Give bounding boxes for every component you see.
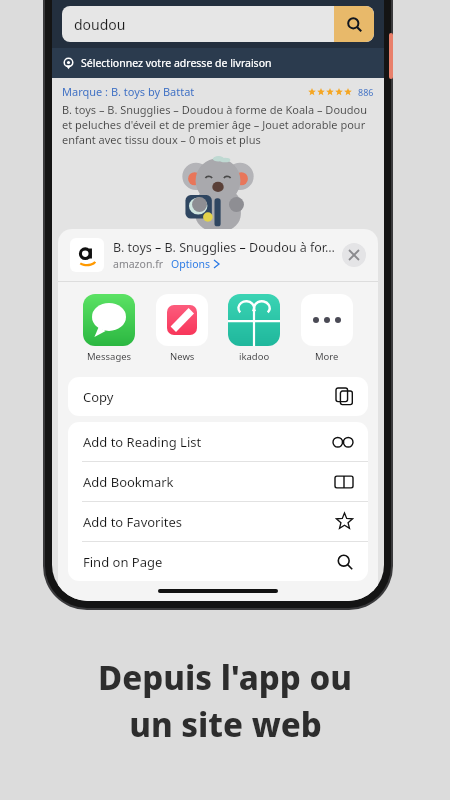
button[interactable]: News	[152, 294, 212, 363]
staticText: ikadoo	[239, 350, 270, 363]
staticText: amazon.fr	[113, 257, 164, 271]
button[interactable]: Add to Reading List	[68, 422, 368, 461]
staticText: News	[170, 350, 195, 363]
button[interactable]: Copy	[68, 377, 368, 416]
staticText: Messages	[87, 350, 132, 363]
button[interactable]: Options	[171, 257, 219, 271]
button[interactable]: Marque : B. toys by Battat	[62, 84, 308, 99]
staticText: Depuis l'app ou	[98, 655, 352, 700]
button[interactable]: Add Bookmark	[68, 462, 368, 501]
staticText: 886	[358, 86, 374, 98]
button[interactable]: Find on Page	[68, 542, 368, 581]
staticText: un site web	[129, 702, 322, 747]
staticText: Options	[171, 257, 211, 271]
staticText: doudou	[74, 15, 334, 34]
button[interactable]: ikadoo	[224, 294, 284, 363]
button[interactable]: Search	[334, 6, 374, 42]
button[interactable]: Messages	[79, 294, 139, 363]
button[interactable]: Sélectionnez votre adresse de livraison	[62, 48, 384, 78]
staticText: Add to Favorites	[83, 513, 336, 531]
staticText: B. toys – B. Snugglies – Doudou à for…	[113, 239, 335, 256]
staticText: Add to Reading List	[83, 433, 333, 451]
staticText: More	[315, 350, 339, 363]
button[interactable]: doudou	[62, 6, 374, 42]
button[interactable]: Close	[342, 243, 366, 267]
staticText: Add Bookmark	[83, 473, 335, 491]
button[interactable]: Add to Favorites	[68, 502, 368, 541]
staticText: Find on Page	[83, 553, 337, 571]
staticText: B. toys – B. Snugglies – Doudou à forme …	[62, 102, 374, 147]
staticText: Sélectionnez votre adresse de livraison	[81, 56, 272, 70]
staticText: Copy	[83, 388, 336, 406]
button[interactable]: More	[297, 294, 357, 363]
